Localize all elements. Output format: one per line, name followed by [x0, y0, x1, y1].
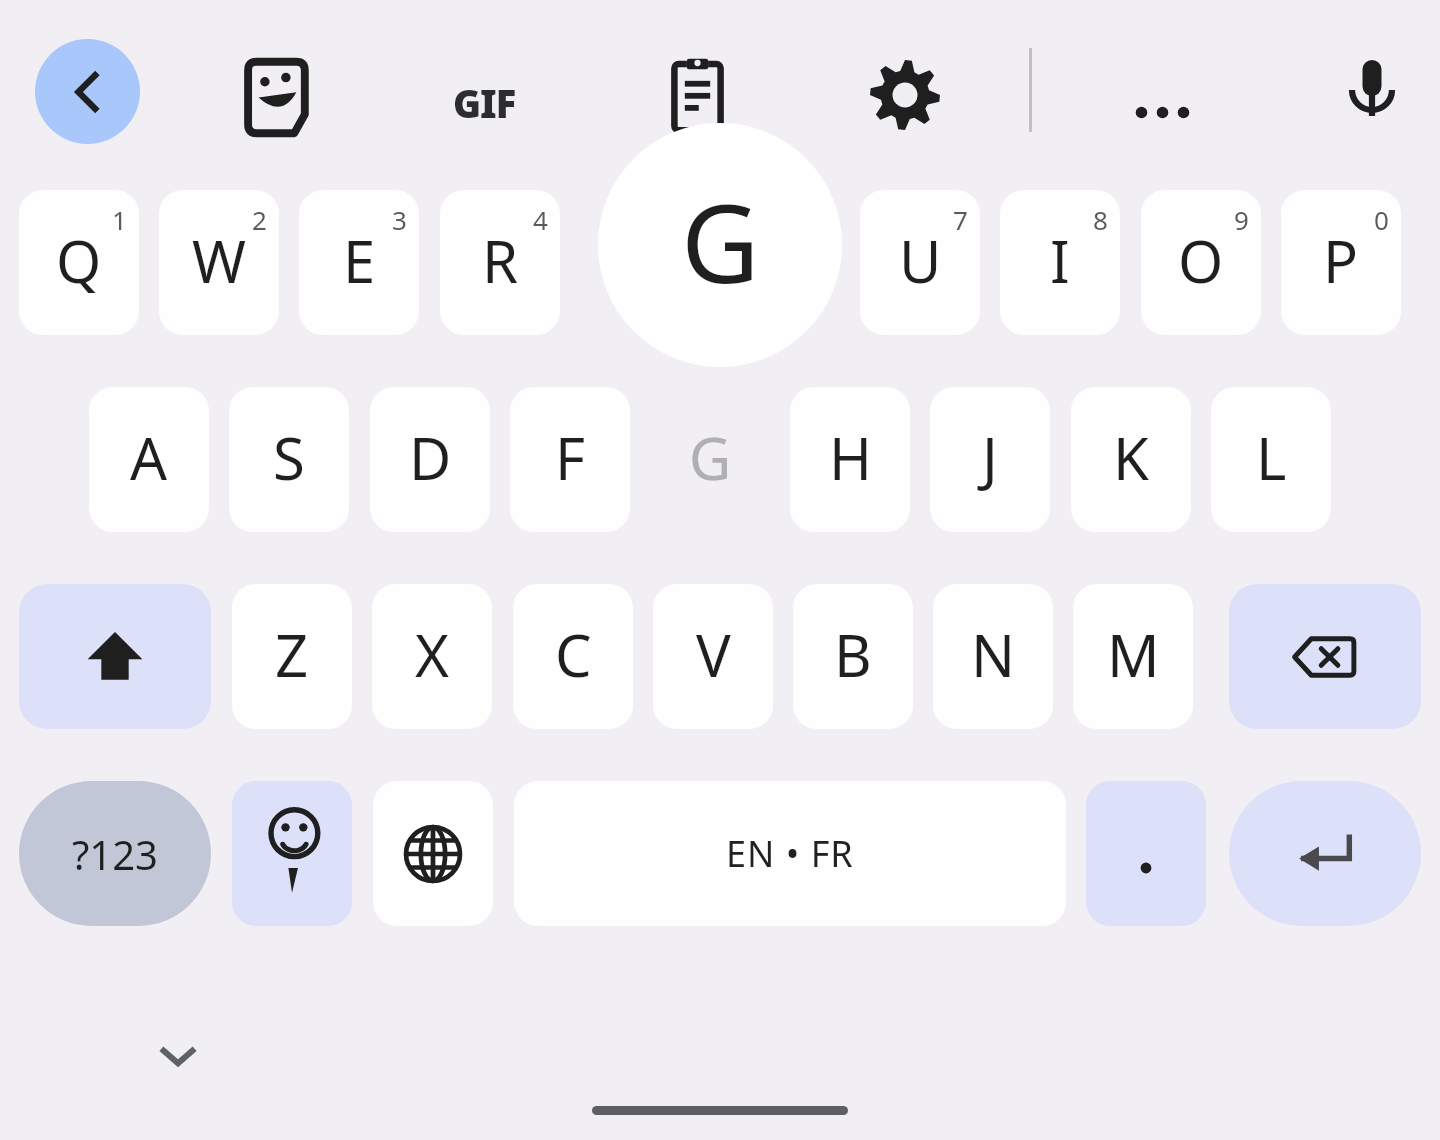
staticText: E	[343, 221, 376, 300]
button[interactable]: Back	[35, 39, 140, 144]
button[interactable]: R	[440, 190, 560, 335]
button[interactable]: X	[372, 584, 492, 729]
staticText: S	[273, 418, 305, 497]
staticText: M	[1107, 615, 1160, 694]
staticText: L	[1256, 418, 1287, 497]
button[interactable]: Backspace	[1229, 584, 1421, 729]
staticText: 8	[1093, 202, 1108, 237]
button[interactable]: Shift	[19, 584, 211, 729]
staticText: V	[696, 615, 731, 694]
button[interactable]: D	[370, 387, 490, 532]
button[interactable]: M	[1073, 584, 1193, 729]
button[interactable]: F	[510, 387, 630, 532]
staticText: 0	[1374, 202, 1389, 237]
button[interactable]: A	[89, 387, 209, 532]
button[interactable]: J	[930, 387, 1050, 532]
staticText: 4	[533, 202, 548, 237]
button[interactable]: S	[229, 387, 349, 532]
staticText: B	[834, 615, 872, 694]
button[interactable]: I	[1000, 190, 1120, 335]
button[interactable]: B	[793, 584, 913, 729]
button[interactable]: ?123	[19, 781, 211, 926]
button[interactable]: C	[513, 584, 633, 729]
staticText: W	[192, 221, 246, 300]
staticText: O	[1178, 221, 1224, 300]
button[interactable]: W	[159, 190, 279, 335]
staticText: 7	[953, 202, 968, 237]
staticText: 2	[252, 202, 267, 237]
button[interactable]: Hide keyboard	[133, 1010, 223, 1100]
button[interactable]: Enter	[1229, 781, 1421, 926]
button[interactable]: O	[1141, 190, 1261, 335]
staticText: 3	[392, 202, 407, 237]
button[interactable]: More options	[1110, 60, 1215, 165]
staticText: A	[130, 418, 168, 497]
button[interactable]: GIF	[432, 50, 537, 155]
button[interactable]	[1086, 781, 1206, 926]
staticText: X	[415, 615, 449, 694]
staticText: P	[1323, 221, 1359, 300]
button[interactable]: V	[653, 584, 773, 729]
button[interactable]: H	[790, 387, 910, 532]
staticText: R	[482, 221, 519, 300]
button[interactable]: Stickers	[225, 45, 330, 150]
button[interactable]: N	[933, 584, 1053, 729]
staticText: C	[555, 615, 592, 694]
button[interactable]: Settings	[855, 45, 955, 145]
button[interactable]: EN • FR	[514, 781, 1066, 926]
staticText: I	[1050, 221, 1070, 300]
button[interactable]: Emoji	[232, 781, 352, 926]
button[interactable]: Voice input	[1322, 40, 1422, 140]
staticText: H	[829, 418, 872, 497]
staticText: Z	[275, 615, 309, 694]
staticText: EN • FR	[726, 829, 854, 878]
button[interactable]: P	[1281, 190, 1401, 335]
staticText: U	[899, 221, 942, 300]
staticText: D	[409, 418, 452, 497]
staticText: F	[555, 418, 586, 497]
button[interactable]: Z	[232, 584, 352, 729]
button[interactable]: G	[650, 387, 770, 532]
staticText: G	[689, 418, 732, 497]
staticText: ?123	[72, 827, 158, 881]
staticText: J	[982, 418, 998, 497]
button[interactable]: K	[1071, 387, 1191, 532]
button[interactable]: L	[1211, 387, 1331, 532]
button[interactable]: GIF	[432, 50, 537, 155]
button[interactable]	[580, 190, 700, 335]
button[interactable]: Clipboard	[645, 42, 750, 147]
staticText: 1	[112, 202, 127, 237]
button[interactable]	[720, 190, 840, 335]
button[interactable]: U	[860, 190, 980, 335]
button[interactable]: E	[299, 190, 419, 335]
staticText: Q	[56, 221, 102, 300]
button[interactable]: Change language	[373, 781, 493, 926]
staticText: N	[971, 615, 1016, 694]
button[interactable]: Q	[19, 190, 139, 335]
staticText: GIF	[453, 77, 516, 129]
staticText: K	[1113, 418, 1149, 497]
staticText: 9	[1234, 202, 1249, 237]
staticText: G	[681, 168, 760, 315]
